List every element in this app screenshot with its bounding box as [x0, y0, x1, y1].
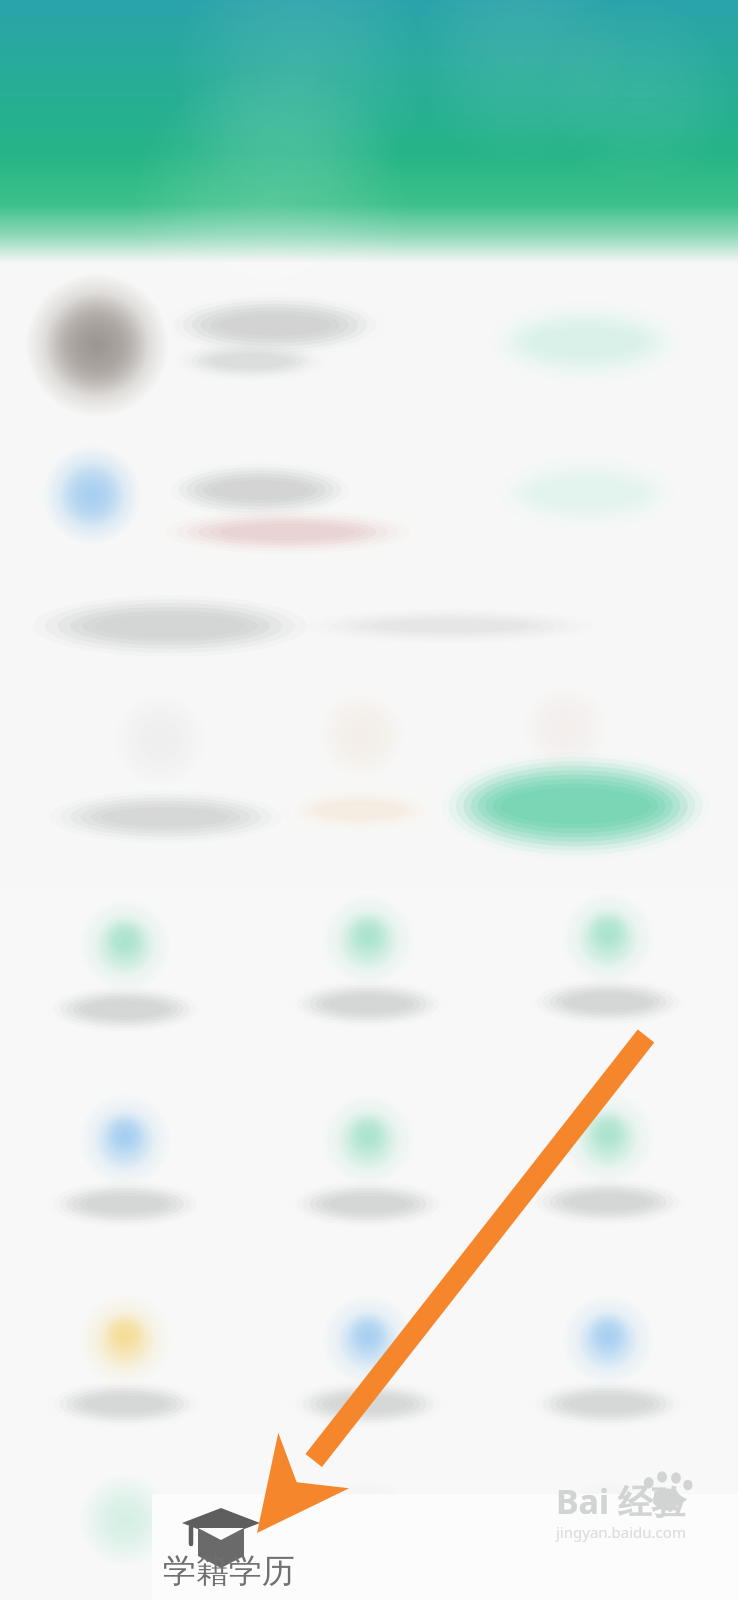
button[interactable]: [152, 1494, 738, 1600]
staticText: jingyan.baidu.com: [556, 1522, 686, 1542]
button[interactable]: 学籍学历: [168, 1500, 286, 1600]
staticText: 学籍学历: [163, 1550, 295, 1592]
staticText: Bai 经验: [556, 1478, 686, 1524]
